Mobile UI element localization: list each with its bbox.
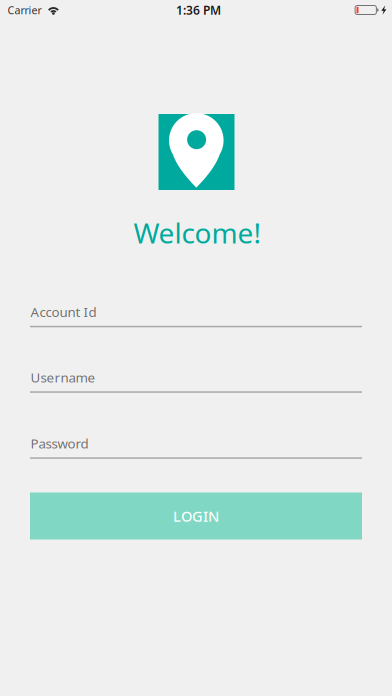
staticText: LOGIN <box>173 506 219 526</box>
staticText: 1:36 PM <box>176 2 221 18</box>
staticText: Welcome! <box>133 214 261 251</box>
button[interactable]: Account Id <box>30 307 362 327</box>
button[interactable]: Username <box>30 372 362 393</box>
staticText: Carrier <box>7 3 41 17</box>
staticText: Password <box>30 434 88 452</box>
button[interactable]: LOGIN <box>30 492 362 539</box>
staticText: Account Id <box>30 303 96 321</box>
button[interactable]: Password <box>30 438 362 459</box>
staticText: Username <box>30 368 95 386</box>
